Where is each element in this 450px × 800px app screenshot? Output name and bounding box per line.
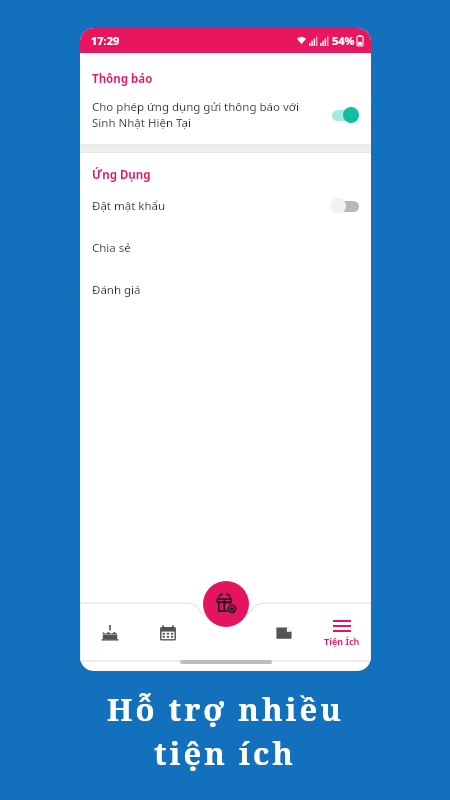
staticText: Tiện Ích: [324, 635, 360, 647]
staticText: Chia sẻ: [92, 240, 131, 256]
button[interactable]: Add gift: [203, 581, 249, 627]
button[interactable]: Notes: [255, 609, 313, 657]
staticText: Thông báo: [92, 71, 153, 87]
staticText: 54%: [332, 33, 355, 48]
staticText: 17:29: [91, 33, 120, 48]
button[interactable]: Đặt mật khẩu: [80, 185, 371, 227]
staticText: Cho phép ứng dụng gửi thông báo với Sinh…: [92, 99, 321, 130]
staticText: Đánh giá: [92, 282, 141, 298]
button[interactable]: Cho phép ứng dụng gửi thông báo với Sinh…: [80, 89, 371, 140]
staticText: Đặt mật khẩu: [92, 198, 329, 214]
button[interactable]: Tiện Ích: [313, 609, 371, 657]
button[interactable]: Birthdays: [80, 609, 139, 657]
button[interactable]: Đánh giá: [80, 269, 371, 311]
button[interactable]: Calendar: [139, 609, 197, 657]
staticText: Ứng Dụng: [92, 167, 151, 183]
staticText: tiện ích: [154, 732, 296, 774]
staticText: Hỗ trợ nhiều: [107, 688, 344, 730]
button[interactable]: Chia sẻ: [80, 227, 371, 269]
